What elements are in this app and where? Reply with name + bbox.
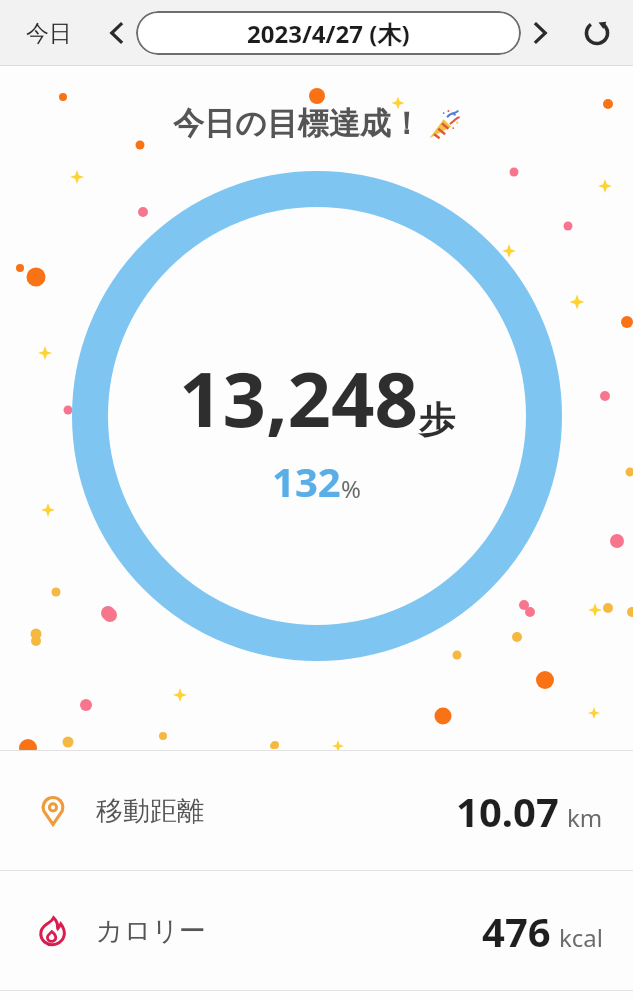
button[interactable]: 2023/4/27 (木) [136,11,521,55]
staticText: 歩 [419,397,455,442]
staticText: 476 [482,904,551,958]
staticText: kcal [559,921,603,954]
button[interactable]: 次の日 [521,14,559,52]
staticText: 今日 [26,19,72,48]
button[interactable]: 前の日 [98,14,136,52]
button[interactable]: カロリー [0,871,633,991]
staticText: 10.07 [456,784,559,838]
staticText: 2023/4/27 (木) [247,17,410,50]
button[interactable]: 更新 [575,11,619,55]
staticText: カロリー [96,914,206,948]
button[interactable]: 今日 [14,13,84,54]
staticText: % [341,472,361,505]
staticText: 132 [272,454,341,508]
button[interactable]: 移動距離 [0,751,633,871]
staticText: 移動距離 [96,794,204,828]
staticText: 13,248 [179,346,419,450]
staticText: km [567,801,603,834]
staticText: 今日の目標達成！ [173,104,422,143]
